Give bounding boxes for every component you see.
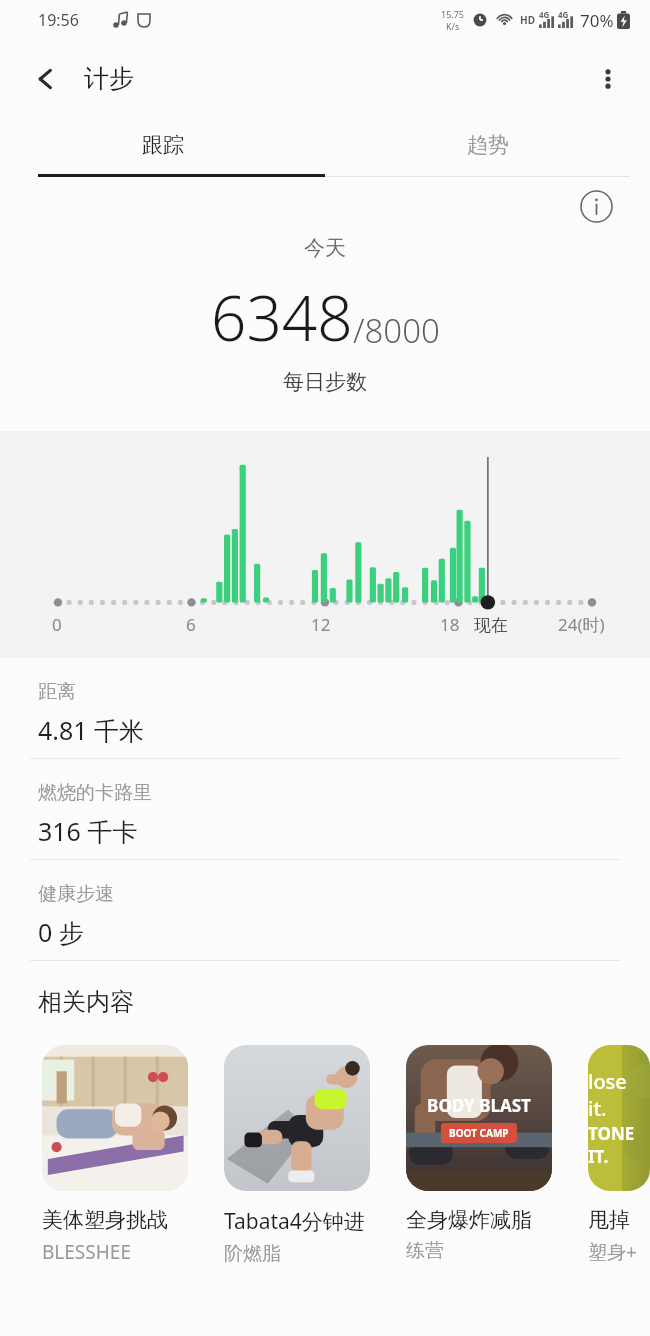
- button[interactable]: Information: [576, 186, 616, 226]
- staticText: 4.81 千米: [38, 713, 145, 747]
- staticText: 距离: [38, 680, 76, 704]
- staticText: HD: [520, 13, 535, 27]
- staticText: 美体塑身挑战: [42, 1207, 168, 1233]
- staticText: 跟踪: [142, 132, 184, 158]
- staticText: 4G: [558, 9, 569, 20]
- button[interactable]: BODY BLAST: [406, 1045, 552, 1263]
- staticText: 0 步: [38, 915, 84, 949]
- staticText: 练营: [406, 1239, 444, 1263]
- button[interactable]: 距离: [0, 658, 650, 758]
- button[interactable]: Tabata4分钟进: [224, 1045, 370, 1266]
- staticText: 4G: [539, 9, 550, 20]
- staticText: 12: [311, 613, 331, 636]
- staticText: 趋势: [467, 132, 509, 158]
- staticText: 健康步速: [38, 882, 114, 906]
- staticText: BLESSHEE: [42, 1239, 131, 1265]
- staticText: 6348: [211, 275, 353, 359]
- button[interactable]: Back: [22, 55, 70, 103]
- button[interactable]: 趋势: [325, 117, 650, 173]
- button[interactable]: 跟踪: [0, 117, 325, 173]
- staticText: 全身爆炸减脂讲: [406, 1207, 552, 1233]
- staticText: 阶燃脂: [224, 1242, 281, 1266]
- staticText: K/s: [446, 20, 460, 32]
- staticText: /8000: [353, 308, 440, 353]
- staticText: 18: [440, 613, 460, 636]
- staticText: 0: [52, 613, 62, 636]
- button[interactable]: 燃烧的卡路里: [0, 759, 650, 859]
- staticText: 19:56: [38, 9, 79, 31]
- staticText: 计步: [84, 63, 134, 94]
- staticText: 今天: [304, 235, 346, 261]
- button[interactable]: lose it.: [588, 1045, 650, 1265]
- staticText: 相关内容: [38, 987, 134, 1017]
- staticText: 316 千卡: [38, 814, 138, 848]
- staticText: 24(时): [558, 613, 605, 636]
- staticText: 每日步数: [283, 369, 367, 395]
- button[interactable]: 美体塑身挑战: [42, 1045, 188, 1265]
- staticText: 6: [186, 613, 196, 636]
- staticText: 甩掉赘肉: [588, 1207, 650, 1233]
- staticText: Tabata4分钟进: [224, 1207, 365, 1236]
- staticText: 塑身+: [588, 1239, 637, 1265]
- staticText: BODY BLAST: [427, 1094, 531, 1117]
- staticText: TONE IT.: [588, 1122, 650, 1168]
- staticText: 15.75: [441, 8, 465, 20]
- staticText: 现在: [474, 615, 508, 636]
- staticText: 燃烧的卡路里: [38, 781, 152, 805]
- staticText: BOOT CAMP: [449, 1126, 509, 1140]
- staticText: 70%: [580, 9, 614, 32]
- staticText: lose it.: [588, 1068, 650, 1122]
- button[interactable]: More options: [584, 55, 632, 103]
- button[interactable]: 健康步速: [0, 860, 650, 960]
